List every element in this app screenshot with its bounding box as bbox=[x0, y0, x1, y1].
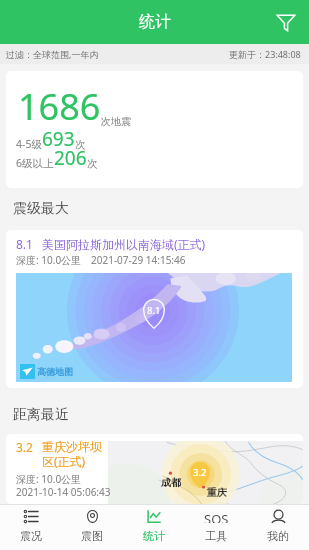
staticText: 次 bbox=[75, 138, 86, 151]
staticText: SOS bbox=[204, 510, 229, 523]
staticText: 3.2 bbox=[193, 466, 207, 479]
staticText: 4-5级 bbox=[16, 137, 42, 151]
button[interactable]: 成都 bbox=[6, 434, 303, 504]
staticText: 距离最近 bbox=[13, 406, 69, 424]
button[interactable]: 我的 bbox=[247, 505, 309, 550]
staticText: 693 bbox=[42, 126, 75, 152]
button[interactable]: 震图 bbox=[61, 505, 123, 550]
staticText: 3.2 bbox=[16, 439, 33, 455]
staticText: 次地震 bbox=[101, 115, 131, 128]
staticText: 震图 bbox=[81, 529, 103, 543]
staticText: 震级最大 bbox=[13, 200, 69, 218]
staticText: 成都 bbox=[161, 476, 181, 489]
button[interactable]: 8.1 bbox=[6, 230, 303, 388]
staticText: 统计 bbox=[139, 12, 171, 32]
staticText: 统计 bbox=[143, 529, 165, 543]
staticText: 重庆沙坪坝 区(正式) bbox=[42, 439, 102, 469]
staticText: 高德地图 bbox=[37, 366, 73, 377]
staticText: 过滤：全球范围,一年内 bbox=[6, 48, 99, 60]
staticText: 深度: 10.0公里 bbox=[16, 472, 82, 486]
button[interactable]: 震况 bbox=[0, 505, 61, 550]
staticText: 美国阿拉斯加州以南海域(正式) bbox=[42, 236, 206, 252]
staticText: 8.1 bbox=[147, 304, 161, 317]
staticText: 我的 bbox=[267, 529, 289, 543]
staticText: 次 bbox=[87, 157, 98, 170]
staticText: 工具 bbox=[205, 529, 227, 543]
button[interactable]: SOS bbox=[185, 505, 247, 550]
staticText: 206 bbox=[54, 145, 87, 171]
staticText: 6级以上 bbox=[16, 156, 54, 170]
button[interactable]: Filter bbox=[271, 7, 301, 37]
staticText: 8.1 bbox=[16, 236, 33, 252]
button[interactable]: 统计 bbox=[123, 505, 185, 550]
staticText: 2021-07-29 14:15:46 bbox=[91, 253, 186, 267]
staticText: 更新于：23:48:08 bbox=[229, 48, 301, 60]
staticText: 震况 bbox=[20, 529, 42, 543]
staticText: 深度: 10.0公里 bbox=[16, 253, 82, 267]
staticText: 1686 bbox=[18, 82, 101, 131]
staticText: 2021-10-14 05:06:43 bbox=[16, 485, 111, 499]
staticText: 重庆 bbox=[207, 486, 227, 499]
button[interactable]: 1686 bbox=[6, 71, 303, 188]
